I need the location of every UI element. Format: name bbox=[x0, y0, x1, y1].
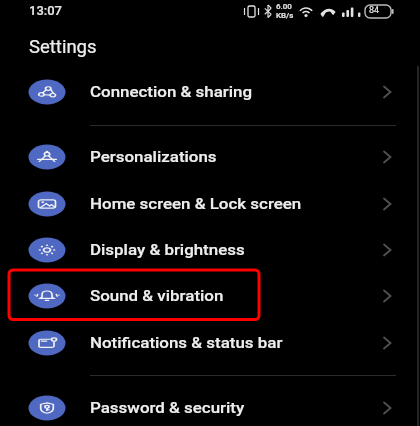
button[interactable]: Home screen & Lock screen bbox=[0, 181, 420, 227]
button[interactable]: Display & brightness bbox=[0, 227, 420, 273]
staticText: KB/s bbox=[276, 11, 294, 20]
button[interactable]: Sound & vibration bbox=[0, 273, 420, 319]
staticText: Notifications & status bar bbox=[90, 334, 283, 352]
button[interactable]: Personalizations bbox=[0, 134, 420, 180]
staticText: Password & security bbox=[90, 399, 245, 417]
staticText: 84 bbox=[369, 5, 380, 16]
staticText: 6.00 bbox=[276, 2, 292, 11]
staticText: Personalizations bbox=[90, 148, 217, 166]
staticText: Sound & vibration bbox=[90, 287, 224, 305]
staticText: 13:07 bbox=[29, 3, 63, 18]
button[interactable]: Notifications & status bar bbox=[0, 320, 420, 366]
button[interactable]: Password & security bbox=[0, 385, 420, 426]
staticText: Home screen & Lock screen bbox=[90, 195, 301, 213]
staticText: Connection & sharing bbox=[90, 83, 252, 101]
staticText: Display & brightness bbox=[90, 241, 245, 259]
staticText: Settings bbox=[29, 36, 97, 58]
button[interactable]: Connection & sharing bbox=[0, 69, 420, 115]
